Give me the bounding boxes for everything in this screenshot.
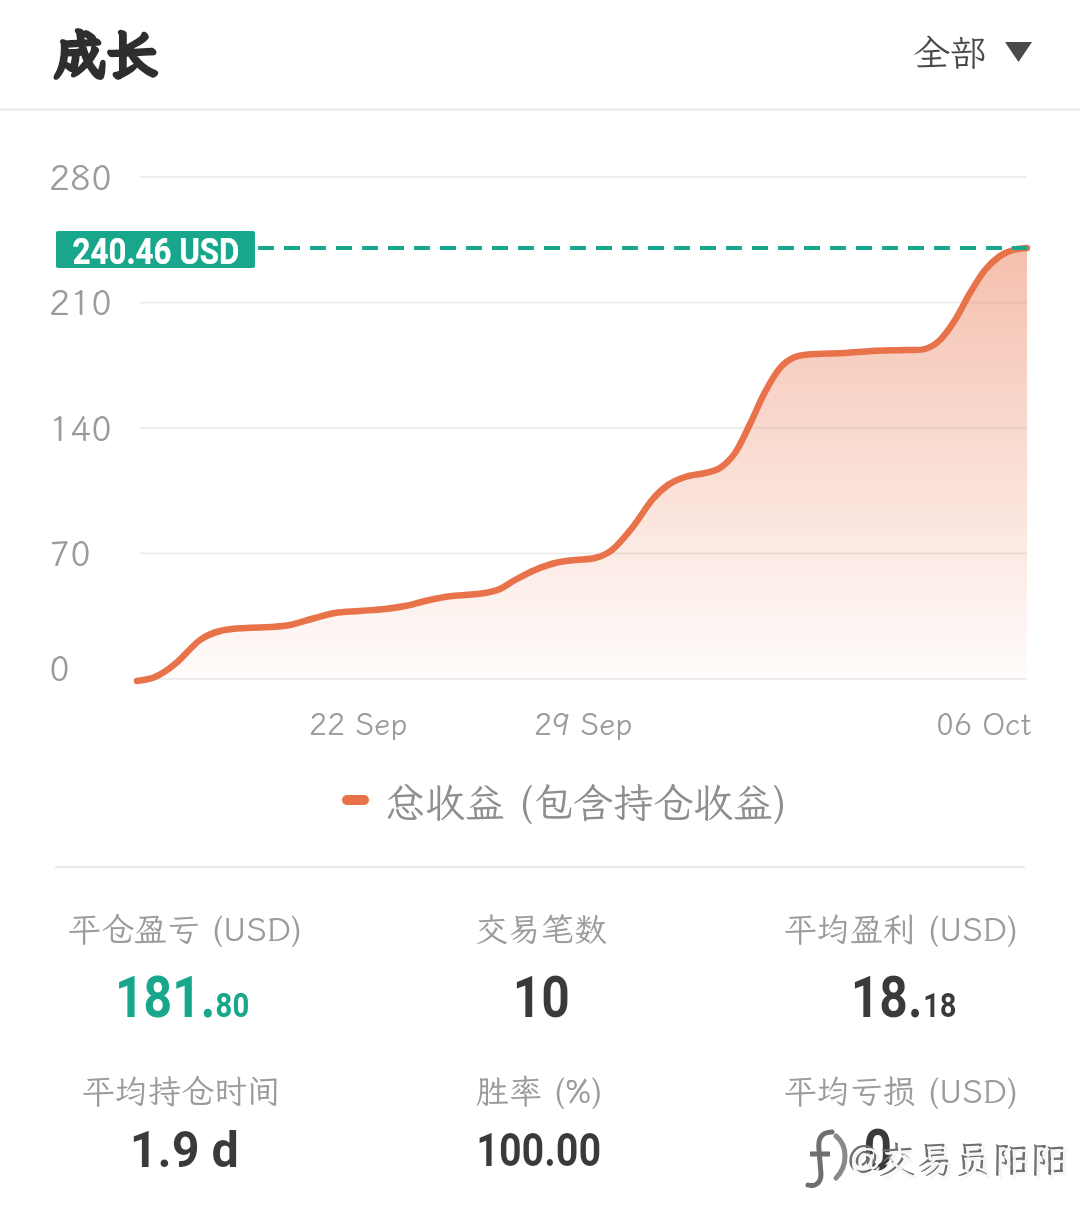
staticText: 平均盈利 (USD) — [784, 907, 1019, 950]
staticText: 181. — [115, 963, 216, 1031]
staticText: 成长 — [54, 19, 159, 87]
staticText: 18. — [851, 963, 923, 1031]
staticText: 1.9 d — [130, 1121, 239, 1180]
staticText: 140 — [49, 405, 113, 451]
staticText: 总收益 (包含持仓收益) — [385, 776, 787, 828]
staticText: 交易笔数 — [475, 907, 607, 950]
staticText: 100.00 — [476, 1123, 602, 1177]
staticText: @交易员阳阳 — [848, 1134, 1068, 1184]
staticText: 0 — [49, 645, 71, 691]
staticText: 280 — [49, 154, 113, 200]
staticText: 18 — [923, 985, 957, 1025]
staticText: 平均亏损 (USD) — [784, 1069, 1019, 1112]
staticText: 胜率 (%) — [476, 1069, 604, 1112]
staticText: 平均持仓时间 — [82, 1069, 280, 1112]
staticText: 平仓盈亏 (USD) — [68, 907, 303, 950]
staticText: 80 — [216, 985, 250, 1025]
staticText: 210 — [49, 279, 113, 325]
staticText: 全部 — [913, 28, 987, 77]
staticText: 成长 — [54, 19, 159, 87]
button[interactable]: 全部 — [895, 24, 1045, 80]
staticText: 29 Sep — [534, 704, 633, 744]
staticText: 0 — [863, 1116, 893, 1184]
staticText: 06 Oct — [936, 704, 1032, 744]
staticText: 70 — [49, 530, 92, 576]
staticText: 10 — [513, 963, 570, 1031]
staticText: @交易员阳阳 — [851, 1137, 1071, 1187]
staticText: 22 Sep — [309, 704, 408, 744]
staticText: 240.46 USD — [72, 231, 239, 268]
